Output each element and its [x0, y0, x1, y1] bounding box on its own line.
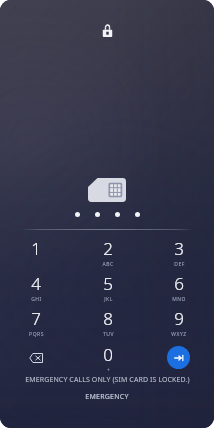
button[interactable]: EMERGENCY: [71, 391, 143, 403]
button[interactable]: 2: [84, 235, 132, 270]
button[interactable]: Enter: [167, 346, 190, 369]
staticText: 6: [174, 272, 184, 295]
button[interactable]: 6: [155, 270, 203, 305]
button[interactable]: 4: [12, 270, 60, 305]
staticText: 3: [174, 237, 184, 260]
staticText: 8: [103, 307, 113, 330]
button[interactable]: 9: [155, 305, 203, 340]
staticText: 0: [103, 343, 113, 366]
staticText: ABC: [102, 261, 114, 268]
staticText: 4: [31, 272, 41, 295]
staticText: 1: [31, 237, 41, 260]
staticText: 2: [103, 237, 113, 260]
staticText: 7: [31, 307, 41, 330]
staticText: 9: [174, 307, 184, 330]
staticText: JKL: [104, 296, 113, 303]
staticText: MNO: [172, 296, 186, 303]
button[interactable]: 3: [155, 235, 203, 270]
button[interactable]: 8: [84, 305, 132, 340]
staticText: DEF: [174, 261, 185, 268]
staticText: PQRS: [29, 331, 44, 338]
staticText: EMERGENCY CALLS ONLY (SIM CARD IS LOCKED…: [25, 375, 190, 385]
button[interactable]: 5: [84, 270, 132, 305]
button[interactable]: 0: [86, 342, 130, 374]
other: Locked: [99, 22, 115, 38]
staticText: EMERGENCY: [85, 392, 129, 402]
staticText: 5: [103, 272, 113, 295]
staticText: GHI: [31, 296, 42, 303]
button[interactable]: Delete: [14, 342, 58, 374]
staticText: WXYZ: [171, 331, 187, 338]
button[interactable]: 1: [12, 235, 60, 270]
staticText: +: [107, 367, 110, 374]
staticText: TUV: [103, 331, 114, 338]
button[interactable]: 7: [12, 305, 60, 340]
